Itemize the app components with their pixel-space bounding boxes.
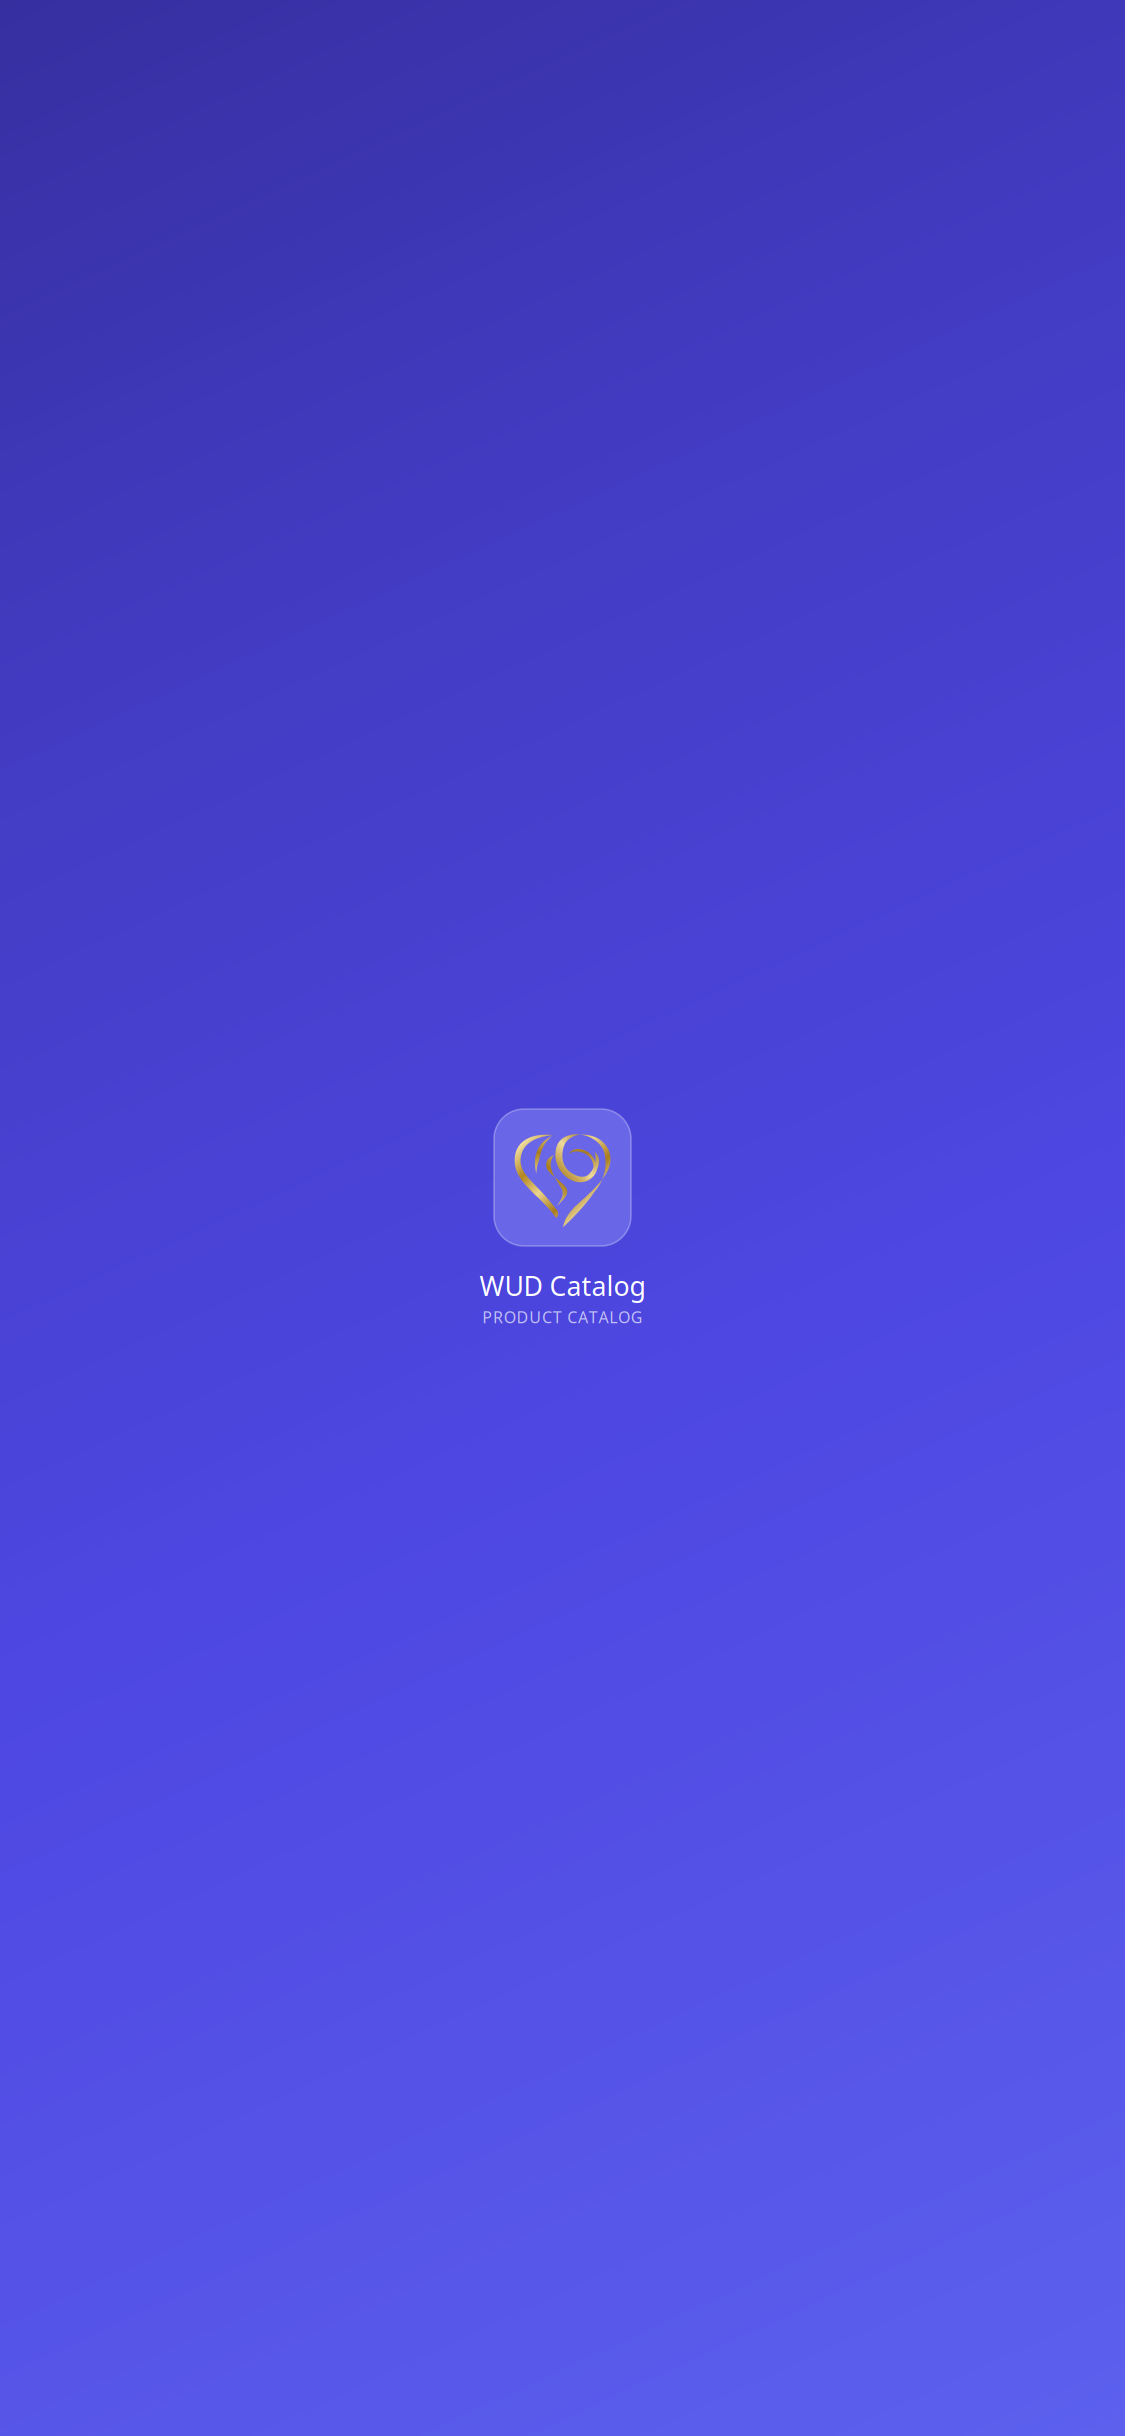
staticText: C [567,1306,577,1328]
staticText: T [553,1306,562,1328]
staticText: L [609,1306,617,1328]
staticText: T [589,1306,598,1328]
staticText: R [493,1306,503,1328]
staticText: A [578,1306,588,1328]
staticText: D [516,1306,528,1328]
staticText: U [529,1306,541,1328]
staticText: A [598,1306,608,1328]
staticText: G [631,1306,643,1328]
staticText: O [618,1306,630,1328]
staticText: WUD Catalog [479,1268,645,1303]
staticText: P [482,1306,492,1328]
staticText: O [504,1306,516,1328]
staticText: C [542,1306,552,1328]
